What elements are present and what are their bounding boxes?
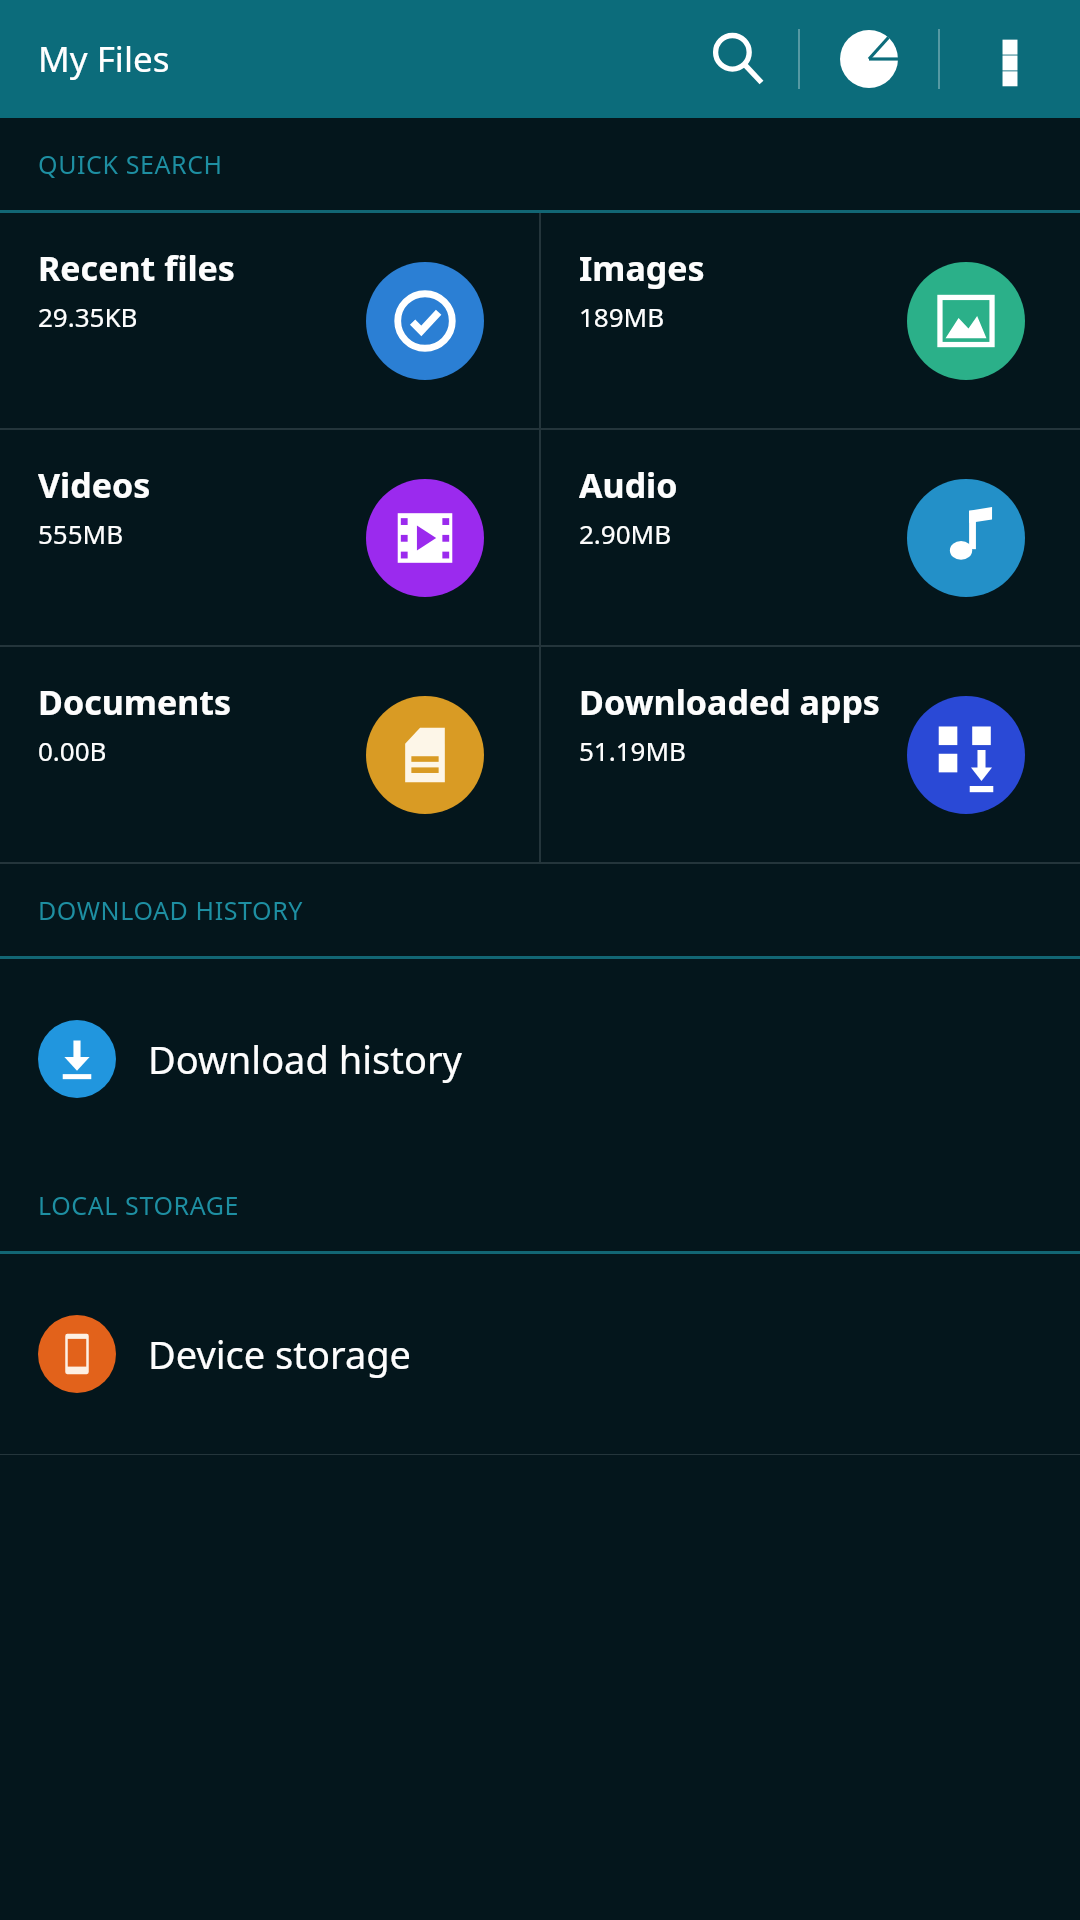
staticText: Images [579, 245, 705, 291]
staticText: QUICK SEARCH [38, 147, 223, 181]
button[interactable]: Downloaded apps [541, 647, 1080, 862]
button[interactable]: Documents [0, 647, 539, 862]
button[interactable]: More options [940, 0, 1080, 118]
staticText: 189MB [579, 299, 665, 334]
staticText: 29.35KB [38, 299, 138, 334]
staticText: 51.19MB [579, 733, 686, 768]
staticText: Downloaded apps [579, 679, 880, 725]
button[interactable]: Videos [0, 430, 539, 645]
button[interactable]: Images [541, 213, 1080, 428]
button[interactable]: Audio [541, 430, 1080, 645]
staticText: Documents [38, 679, 232, 725]
button[interactable]: Search [678, 0, 798, 118]
staticText: Device storage [148, 1328, 412, 1380]
staticText: Recent files [38, 245, 235, 291]
button[interactable]: Recent files [0, 213, 539, 428]
staticText: Videos [38, 462, 151, 508]
button[interactable]: Download history [0, 959, 1080, 1159]
staticText: Download history [148, 1033, 462, 1085]
staticText: Audio [579, 462, 678, 508]
staticText: LOCAL STORAGE [38, 1188, 240, 1222]
staticText: 0.00B [38, 733, 107, 768]
button[interactable]: Storage usage [800, 0, 938, 118]
staticText: My Files [38, 35, 170, 83]
staticText: DOWNLOAD HISTORY [38, 893, 304, 927]
button[interactable]: Device storage [0, 1254, 1080, 1454]
staticText: 555MB [38, 516, 124, 551]
staticText: 2.90MB [579, 516, 672, 551]
